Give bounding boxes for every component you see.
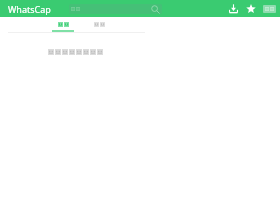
button[interactable]: Menu — [260, 0, 278, 17]
button[interactable] — [69, 4, 162, 14]
staticText: WhatsCap — [8, 3, 51, 15]
button[interactable]: Download — [224, 0, 242, 17]
button[interactable] — [90, 17, 109, 27]
button[interactable]: Favorites — [242, 0, 260, 17]
button[interactable] — [48, 17, 78, 32]
